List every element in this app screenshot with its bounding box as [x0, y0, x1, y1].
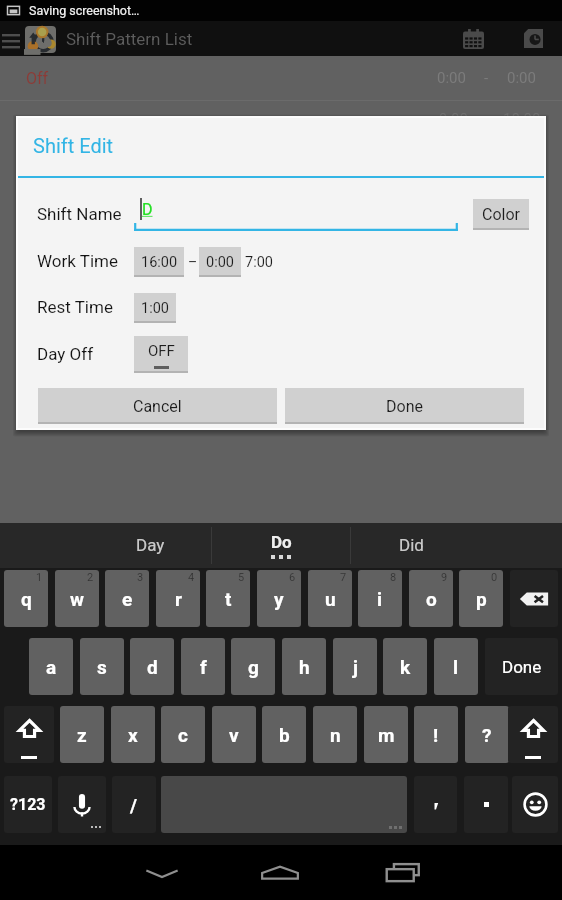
staticText: 9:00 — [439, 110, 468, 128]
button[interactable]: Home — [250, 845, 310, 900]
staticText: h — [299, 656, 310, 678]
button[interactable]: 3 — [105, 570, 149, 627]
button[interactable]: x — [111, 706, 155, 763]
button[interactable]: Did — [351, 523, 562, 568]
staticText: Shift Pattern List — [66, 29, 193, 49]
staticText: u — [325, 588, 336, 610]
button[interactable]: d — [130, 638, 174, 695]
button[interactable]: Done — [285, 388, 524, 424]
staticText: 4 — [188, 571, 195, 584]
button[interactable]: ? — [465, 706, 509, 763]
staticText: 1 — [36, 571, 43, 584]
staticText: 3 — [137, 571, 144, 584]
staticText: o — [426, 588, 437, 610]
button[interactable]: h — [282, 638, 326, 695]
staticText: - — [486, 110, 491, 128]
staticText: 7 — [340, 571, 347, 584]
button[interactable]: 9 — [409, 570, 453, 627]
staticText: ? — [482, 724, 492, 746]
button[interactable]: b — [262, 706, 306, 763]
button[interactable]: ?123 — [4, 776, 52, 833]
button[interactable]: Day — [0, 523, 212, 568]
button[interactable]: / — [112, 776, 156, 833]
button[interactable]: 4 — [156, 570, 200, 627]
staticText: z — [77, 724, 87, 746]
button[interactable]: m — [364, 706, 408, 763]
staticText: – — [188, 254, 198, 270]
button[interactable]: Shift — [4, 706, 54, 763]
button[interactable]: k — [383, 638, 427, 695]
staticText: 0:00 — [206, 254, 234, 271]
button[interactable]: Done — [485, 638, 558, 695]
button[interactable]: 1 — [4, 570, 48, 627]
button[interactable]: Do — [212, 523, 350, 568]
staticText: f — [200, 656, 207, 678]
staticText: b — [279, 724, 290, 746]
button[interactable]: Emoji — [512, 776, 558, 833]
button[interactable]: OFF — [134, 336, 188, 373]
staticText: Day — [136, 535, 165, 555]
staticText: n — [330, 724, 341, 746]
staticText: OFF — [148, 342, 175, 360]
staticText: 8 — [390, 571, 397, 584]
staticText: a — [46, 656, 57, 678]
button[interactable]: Cancel — [38, 388, 277, 424]
button[interactable]: g — [231, 638, 275, 695]
button[interactable]: Hide keyboard — [132, 845, 192, 900]
button[interactable]: 2 — [55, 570, 99, 627]
button[interactable]: a — [29, 638, 73, 695]
staticText: Rest Time — [37, 297, 113, 317]
button[interactable]: v — [212, 706, 256, 763]
staticText: Shift Name — [37, 204, 122, 224]
staticText: Color — [482, 205, 520, 224]
staticText: 18:00 — [503, 110, 541, 128]
staticText: Day Off — [37, 344, 94, 364]
staticText: Do — [271, 532, 292, 552]
staticText: - — [484, 69, 489, 87]
staticText: 0:00 — [507, 69, 536, 87]
staticText: D — [142, 200, 153, 219]
staticText: Work Time — [37, 251, 118, 271]
staticText: Shift Edit — [33, 134, 114, 157]
button[interactable]: n — [313, 706, 357, 763]
button[interactable]: s — [80, 638, 124, 695]
staticText: Off — [26, 69, 49, 88]
staticText: Cancel — [133, 397, 182, 416]
button[interactable]: Color — [473, 199, 529, 230]
staticText: d — [147, 656, 158, 678]
button[interactable]: 7 — [308, 570, 352, 627]
button[interactable]: ! — [414, 706, 458, 763]
button[interactable]: Period — [464, 776, 508, 833]
button[interactable]: 5 — [206, 570, 250, 627]
staticText: Done — [502, 657, 542, 677]
staticText: s — [97, 656, 107, 678]
button[interactable]: 0:00 — [199, 247, 241, 277]
button[interactable]: l — [434, 638, 478, 695]
button[interactable]: 16:00 — [134, 247, 184, 277]
button[interactable]: Voice input — [58, 776, 106, 833]
button[interactable]: z — [60, 706, 104, 763]
staticText: y — [274, 588, 284, 610]
button[interactable]: Comma — [414, 776, 457, 833]
button[interactable]: 0 — [459, 570, 503, 627]
button[interactable]: Shift — [508, 706, 558, 763]
staticText: x — [128, 724, 138, 746]
staticText: i — [377, 588, 383, 610]
button[interactable]: 8 — [358, 570, 402, 627]
staticText: c — [178, 724, 188, 746]
staticText: q — [21, 588, 32, 610]
staticText: k — [400, 656, 411, 678]
button[interactable]: Calendar — [452, 21, 494, 56]
staticText: 5 — [238, 571, 245, 584]
button[interactable]: 6 — [257, 570, 301, 627]
button[interactable]: f — [181, 638, 225, 695]
button[interactable]: Recent apps — [374, 845, 434, 900]
staticText: 1:00 — [141, 300, 169, 317]
button[interactable]: Clock — [512, 21, 554, 56]
button[interactable]: Delete — [510, 570, 558, 627]
button[interactable]: 1:00 — [134, 293, 176, 323]
button[interactable]: j — [333, 638, 377, 695]
staticText: g — [248, 656, 259, 678]
button[interactable]: c — [161, 706, 205, 763]
